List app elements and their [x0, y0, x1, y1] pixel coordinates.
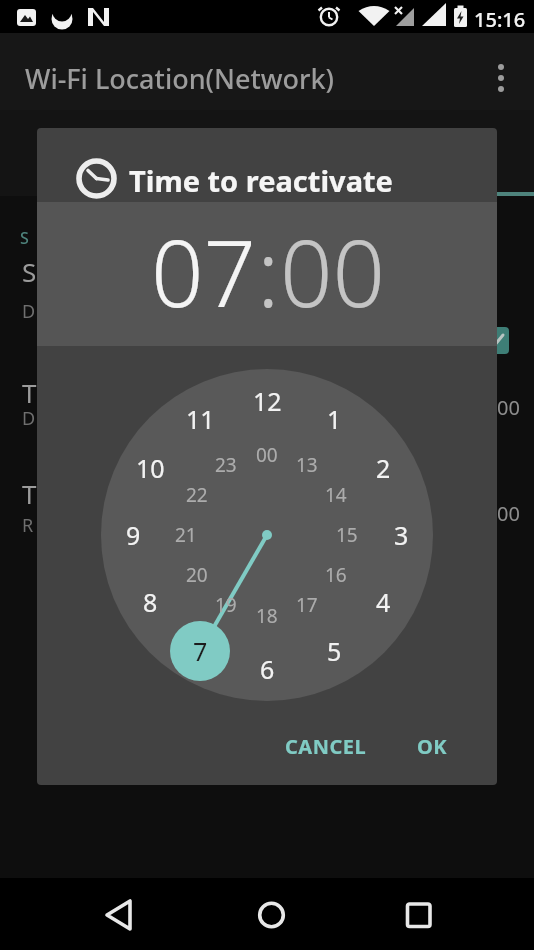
staticText: OK	[417, 733, 448, 760]
staticText: 8	[143, 585, 158, 619]
staticText: :	[257, 209, 280, 319]
staticText: 15	[336, 522, 358, 548]
button[interactable]: 10	[120, 451, 180, 485]
button[interactable]: 4	[353, 585, 413, 619]
button[interactable]: 15	[322, 521, 372, 549]
button[interactable]: 2	[353, 451, 413, 485]
staticText: D	[22, 299, 36, 324]
button[interactable]: CANCEL	[265, 722, 387, 770]
button[interactable]: 1	[304, 402, 364, 436]
button[interactable]: 8	[120, 585, 180, 619]
staticText: 14	[325, 482, 347, 508]
button[interactable]: 5	[304, 634, 364, 668]
staticText: 3	[394, 518, 409, 552]
staticText: 10	[136, 451, 165, 485]
staticText: 13	[296, 452, 318, 478]
staticText: 19	[215, 592, 237, 618]
staticText: 21	[175, 522, 197, 548]
button[interactable]: 16	[311, 561, 361, 589]
staticText: 5	[327, 634, 342, 668]
button[interactable]: 9	[103, 518, 163, 552]
button[interactable]: 7	[170, 634, 230, 668]
staticText: 7	[193, 634, 208, 668]
staticText: S	[22, 254, 37, 289]
staticText: 18	[256, 603, 278, 629]
staticText: S	[20, 227, 29, 249]
button[interactable]: OK	[398, 722, 466, 770]
button[interactable]: 14	[311, 481, 361, 509]
button[interactable]: 19	[201, 591, 251, 619]
button[interactable]: 23	[201, 451, 251, 479]
button[interactable]: 18	[242, 602, 292, 630]
button[interactable]: 6	[237, 652, 297, 686]
staticText: Time to reactivate	[129, 161, 393, 200]
staticText: 17	[296, 592, 318, 618]
staticText: 12	[253, 384, 282, 418]
button[interactable]	[95, 891, 155, 939]
staticText: 00	[497, 500, 520, 527]
staticText: 4	[376, 585, 391, 619]
button[interactable]: 20	[172, 561, 222, 589]
staticText: T	[22, 375, 37, 410]
button[interactable]	[242, 891, 302, 939]
staticText: 00	[497, 394, 520, 421]
button[interactable]: 11	[170, 402, 230, 436]
staticText: Wi-Fi Location(Network)	[25, 60, 335, 97]
staticText: 20	[186, 562, 208, 588]
staticText: 11	[186, 402, 215, 436]
staticText: 00	[280, 209, 386, 319]
staticText: 07	[151, 209, 257, 319]
button[interactable]: 17	[282, 591, 332, 619]
staticText: 1	[327, 402, 342, 436]
button[interactable]: 00	[242, 441, 292, 469]
staticText: R	[22, 513, 34, 538]
button[interactable]: 3	[371, 518, 431, 552]
staticText: 6	[260, 652, 275, 686]
button[interactable]: 22	[172, 481, 222, 509]
button[interactable]	[389, 891, 449, 939]
staticText: 00	[256, 442, 278, 468]
staticText: 16	[325, 562, 347, 588]
staticText: T	[22, 476, 37, 511]
button[interactable]	[487, 58, 515, 98]
staticText: 23	[215, 452, 237, 478]
staticText: 22	[186, 482, 208, 508]
staticText: 9	[126, 518, 141, 552]
button[interactable]: 21	[161, 521, 211, 549]
button[interactable]: 12	[237, 384, 297, 418]
staticText: 15:16	[474, 6, 526, 33]
button[interactable]: 13	[282, 451, 332, 479]
staticText: D	[22, 406, 36, 431]
staticText: 2	[376, 451, 391, 485]
staticText: CANCEL	[285, 733, 367, 760]
